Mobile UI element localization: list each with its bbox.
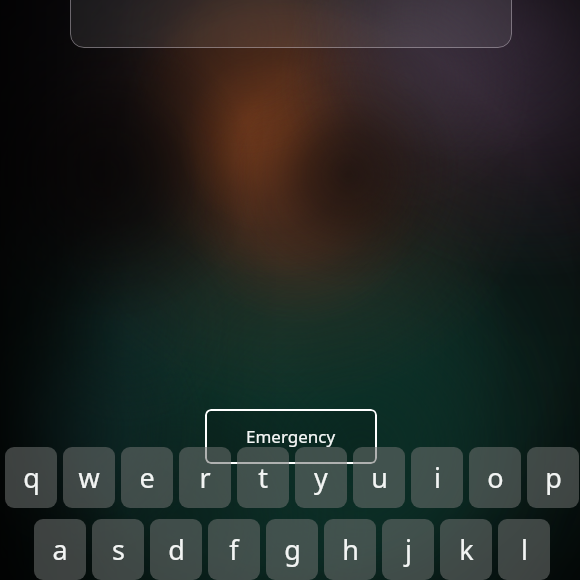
button[interactable]: h xyxy=(324,519,376,580)
button[interactable]: p xyxy=(527,447,579,508)
button[interactable]: e xyxy=(121,447,173,508)
staticText: h xyxy=(342,531,359,568)
staticText: l xyxy=(521,531,528,568)
button[interactable]: j xyxy=(382,519,434,580)
button[interactable]: d xyxy=(150,519,202,580)
staticText: y xyxy=(314,459,328,496)
staticText: p xyxy=(545,459,562,496)
staticText: k xyxy=(459,531,474,568)
staticText: r xyxy=(199,459,211,496)
staticText: j xyxy=(405,531,412,568)
staticText: e xyxy=(139,459,155,496)
button[interactable]: o xyxy=(469,447,521,508)
staticText: d xyxy=(168,531,185,568)
button[interactable]: y xyxy=(295,447,347,508)
button[interactable]: i xyxy=(411,447,463,508)
staticText: w xyxy=(78,459,100,496)
button[interactable]: a xyxy=(34,519,86,580)
staticText: q xyxy=(23,459,40,496)
staticText: f xyxy=(229,531,239,568)
button[interactable]: l xyxy=(498,519,550,580)
staticText: g xyxy=(284,531,301,568)
button[interactable]: t xyxy=(237,447,289,508)
button[interactable]: f xyxy=(208,519,260,580)
button[interactable]: g xyxy=(266,519,318,580)
button[interactable]: s xyxy=(92,519,144,580)
button[interactable]: k xyxy=(440,519,492,580)
button[interactable]: u xyxy=(353,447,405,508)
button[interactable]: r xyxy=(179,447,231,508)
button[interactable]: q xyxy=(5,447,57,508)
button[interactable]: w xyxy=(63,447,115,508)
button[interactable]: Password field xyxy=(70,0,512,48)
button[interactable]: Emergency xyxy=(205,409,377,464)
staticText: i xyxy=(434,459,441,496)
staticText: a xyxy=(52,531,68,568)
staticText: t xyxy=(258,459,268,496)
staticText: o xyxy=(487,459,504,496)
staticText: u xyxy=(371,459,388,496)
staticText: Emergency xyxy=(246,425,336,448)
staticText: s xyxy=(112,531,125,568)
